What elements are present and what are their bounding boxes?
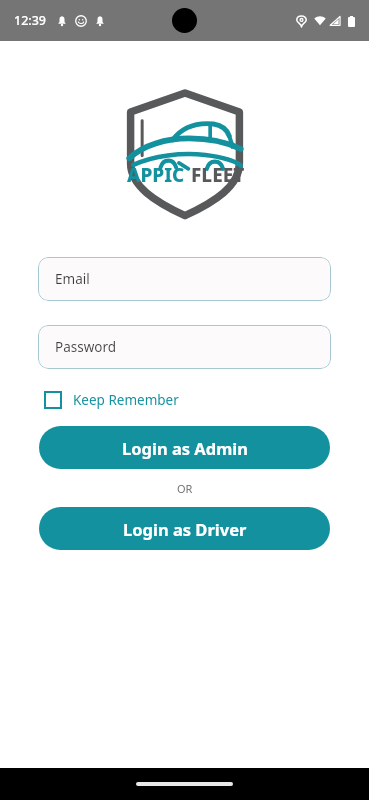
staticText: APPIC [127, 162, 185, 188]
staticText: Login as Admin [122, 437, 248, 459]
staticText: Email [55, 270, 90, 288]
button[interactable]: Email [38, 257, 331, 301]
button[interactable]: Login as Admin [39, 426, 330, 469]
staticText: OR [177, 481, 193, 496]
staticText: Keep Remember [73, 391, 179, 409]
button[interactable]: Login as Driver [39, 507, 330, 550]
button[interactable]: Keep Remember [40, 387, 183, 413]
button[interactable]: Password [38, 325, 331, 369]
staticText: Login as Driver [123, 518, 247, 540]
staticText: 12:39 [14, 12, 47, 29]
staticText: Password [55, 338, 117, 356]
other: Appic Fleet logo [117, 87, 253, 219]
staticText: FLEET [191, 162, 245, 188]
